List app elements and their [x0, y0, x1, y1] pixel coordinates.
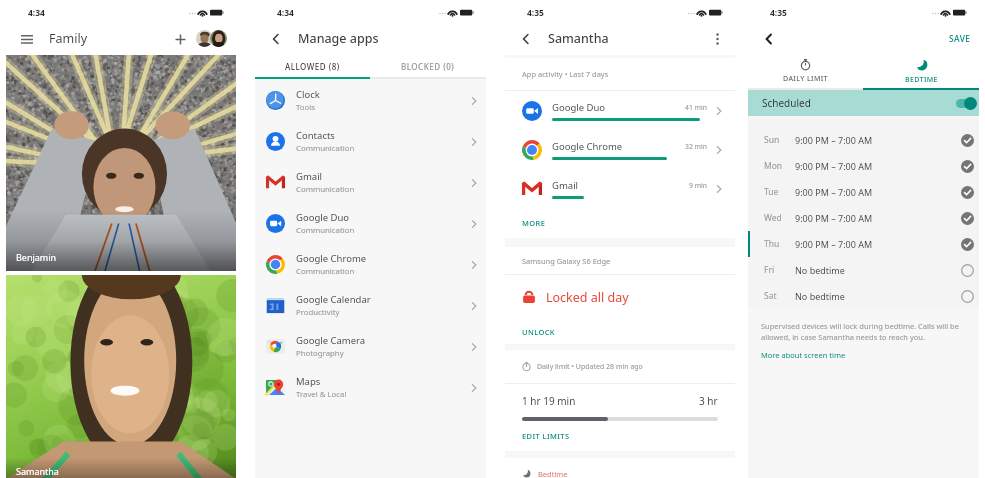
- staticText: Contacts: [296, 129, 335, 142]
- staticText: App activity • Last 7 days: [522, 69, 609, 79]
- staticText: Google Calendar: [296, 293, 371, 306]
- button[interactable]: Google Chrome: [505, 130, 735, 169]
- staticText: 9:00 PM – 7:00 AM: [795, 186, 873, 198]
- staticText: Google Chrome: [296, 252, 367, 265]
- staticText: Supervised devices will lock during bedt…: [761, 321, 966, 342]
- staticText: Google Camera: [296, 334, 366, 347]
- staticText: Sun: [764, 134, 795, 146]
- button[interactable]: Gmail: [255, 162, 486, 203]
- staticText: 9:00 PM – 7:00 AM: [795, 134, 873, 146]
- staticText: Photography: [296, 348, 344, 359]
- staticText: Sat: [764, 290, 795, 302]
- button[interactable]: Wed: [748, 205, 979, 231]
- button[interactable]: SAVE: [947, 29, 973, 49]
- staticText: 9:00 PM – 7:00 AM: [795, 160, 873, 172]
- staticText: BEDTIME: [905, 75, 938, 85]
- staticText: BLOCKED (0): [401, 61, 455, 72]
- button[interactable]: Back: [266, 29, 286, 49]
- staticText: Clock: [296, 88, 320, 101]
- button[interactable]: Mon: [748, 153, 979, 179]
- button[interactable]: Samantha: [6, 275, 236, 478]
- button[interactable]: ALLOWED (8): [255, 55, 370, 77]
- staticText: Communication: [296, 266, 355, 277]
- staticText: SAVE: [949, 33, 971, 45]
- staticText: UNLOCK: [522, 327, 555, 337]
- staticText: 3 hr: [699, 394, 718, 408]
- button[interactable]: Back: [760, 30, 778, 48]
- staticText: Communication: [296, 184, 355, 195]
- button[interactable]: Sat: [748, 283, 979, 309]
- staticText: Scheduled: [762, 96, 811, 110]
- button[interactable]: Fri: [748, 257, 979, 283]
- button[interactable]: More about screen time: [761, 350, 846, 360]
- staticText: DAILY LIMIT: [783, 74, 828, 84]
- staticText: Gmail: [296, 170, 323, 183]
- staticText: Maps: [296, 375, 321, 388]
- staticText: Samantha: [548, 30, 609, 47]
- button[interactable]: EDIT LIMITS: [505, 421, 735, 451]
- staticText: Benjamin: [16, 251, 57, 263]
- staticText: Samsung Galaxy S6 Edge: [522, 256, 611, 266]
- staticText: Manage apps: [298, 30, 379, 47]
- staticText: Daily limit • Updated 28 min ago: [537, 362, 643, 372]
- button[interactable]: Contacts: [255, 121, 486, 162]
- staticText: 9:00 PM – 7:00 AM: [795, 238, 873, 250]
- staticText: 4:34: [28, 7, 45, 19]
- button[interactable]: Benjamin: [6, 55, 236, 271]
- staticText: Wed: [764, 212, 795, 224]
- button[interactable]: BLOCKED (0): [370, 55, 486, 77]
- button[interactable]: MORE: [505, 208, 735, 238]
- button[interactable]: Google Calendar: [255, 285, 486, 326]
- staticText: Google Duo: [552, 101, 606, 114]
- button[interactable]: Thu: [748, 231, 979, 257]
- staticText: Thu: [764, 238, 795, 250]
- staticText: No bedtime: [795, 264, 845, 276]
- staticText: Gmail: [552, 179, 579, 192]
- staticText: Tue: [764, 186, 795, 198]
- staticText: Productivity: [296, 307, 340, 318]
- button[interactable]: Google Duo: [255, 203, 486, 244]
- button[interactable]: Gmail: [505, 169, 735, 208]
- staticText: 9 min: [689, 181, 707, 190]
- staticText: Google Duo: [296, 211, 350, 224]
- button[interactable]: Maps: [255, 367, 486, 408]
- staticText: Tools: [296, 102, 315, 113]
- staticText: Communication: [296, 225, 355, 236]
- staticText: Bedtime: [538, 469, 568, 478]
- button[interactable]: UNLOCK: [505, 319, 735, 344]
- button[interactable]: Google Duo: [505, 91, 735, 130]
- staticText: 9:00 PM – 7:00 AM: [795, 212, 873, 224]
- staticText: No bedtime: [795, 290, 845, 302]
- button[interactable]: Sun: [748, 127, 979, 153]
- staticText: Mon: [764, 160, 795, 172]
- button[interactable]: BEDTIME: [863, 55, 979, 88]
- button[interactable]: Back: [516, 29, 536, 49]
- staticText: 41 min: [685, 103, 707, 112]
- button[interactable]: Scheduled: [748, 90, 979, 116]
- staticText: Travel & Local: [296, 389, 347, 400]
- staticText: 32 min: [685, 142, 707, 151]
- button[interactable]: Tue: [748, 179, 979, 205]
- staticText: Locked all day: [546, 289, 629, 306]
- staticText: Google Chrome: [552, 140, 623, 153]
- staticText: Family: [49, 30, 88, 47]
- staticText: EDIT LIMITS: [522, 431, 570, 441]
- staticText: 1 hr 19 min: [522, 394, 576, 408]
- staticText: MORE: [522, 218, 546, 228]
- staticText: More about screen time: [761, 350, 846, 360]
- button[interactable]: Clock: [255, 80, 486, 121]
- staticText: Communication: [296, 143, 355, 154]
- button[interactable]: Google Chrome: [255, 244, 486, 285]
- button[interactable]: Add: [170, 29, 190, 49]
- button[interactable]: Menu: [17, 29, 37, 49]
- staticText: 4:34: [277, 7, 294, 19]
- button[interactable]: DAILY LIMIT: [748, 55, 863, 88]
- button[interactable]: Google Camera: [255, 326, 486, 367]
- button[interactable]: Account: [196, 29, 227, 48]
- staticText: 4:35: [527, 7, 544, 19]
- staticText: Fri: [764, 264, 795, 276]
- button[interactable]: More options: [708, 30, 726, 48]
- staticText: Samantha: [16, 465, 59, 477]
- staticText: 4:35: [770, 7, 787, 19]
- staticText: ALLOWED (8): [285, 61, 340, 72]
